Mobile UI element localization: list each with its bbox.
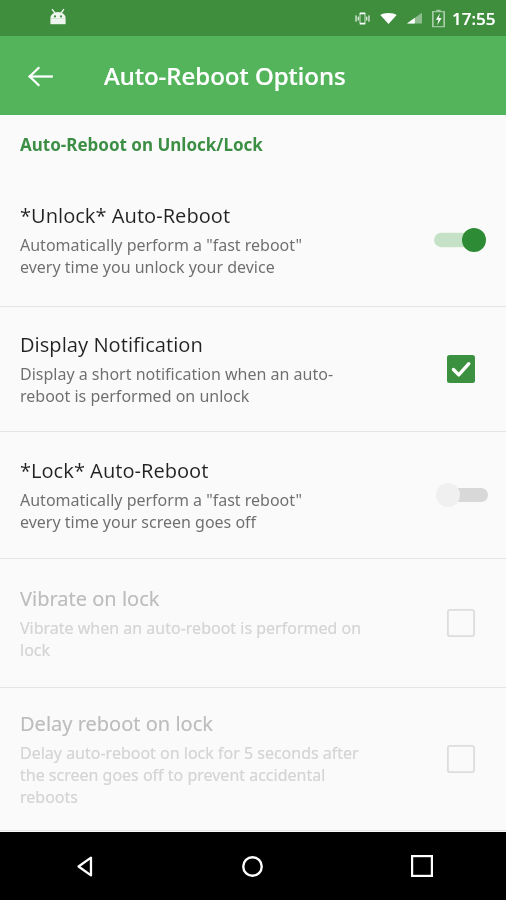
button[interactable]: Display Notification [0, 307, 506, 431]
button[interactable]: Unchecked [444, 742, 478, 776]
button[interactable]: *Unlock* Auto-Reboot [0, 173, 506, 306]
staticText: Display Notification [20, 331, 203, 358]
staticText: Delay auto-reboot on lock for 5 seconds … [20, 742, 359, 808]
staticText: *Lock* Auto-Reboot [20, 457, 209, 484]
staticText: Auto-Reboot Options [104, 59, 346, 92]
staticText: Display a short notification when an aut… [20, 363, 334, 407]
button[interactable]: *Lock* Auto-Reboot [0, 432, 506, 558]
staticText: Vibrate on lock [20, 585, 160, 612]
button[interactable]: Checked [444, 352, 478, 386]
button[interactable]: Home [168, 832, 337, 900]
button[interactable]: Vibrate on lock [0, 559, 506, 687]
staticText: Delay reboot on lock [20, 710, 213, 737]
button[interactable]: Back [0, 832, 168, 900]
button[interactable]: Recent apps [337, 832, 506, 900]
button[interactable]: Delay reboot on lock [0, 688, 506, 830]
staticText: Auto-Reboot on Unlock/Lock [20, 133, 263, 156]
button[interactable]: Toggle off [434, 480, 488, 510]
button[interactable]: Back [12, 48, 68, 104]
button[interactable]: Unchecked [444, 606, 478, 640]
staticText: 17:55 [452, 7, 496, 30]
staticText: Vibrate when an auto-reboot is performed… [20, 617, 362, 661]
staticText: *Unlock* Auto-Reboot [20, 202, 231, 229]
staticText: Automatically perform a "fast reboot" ev… [20, 489, 302, 533]
staticText: Automatically perform a "fast reboot" ev… [20, 234, 302, 278]
button[interactable]: Toggle on [434, 225, 488, 255]
